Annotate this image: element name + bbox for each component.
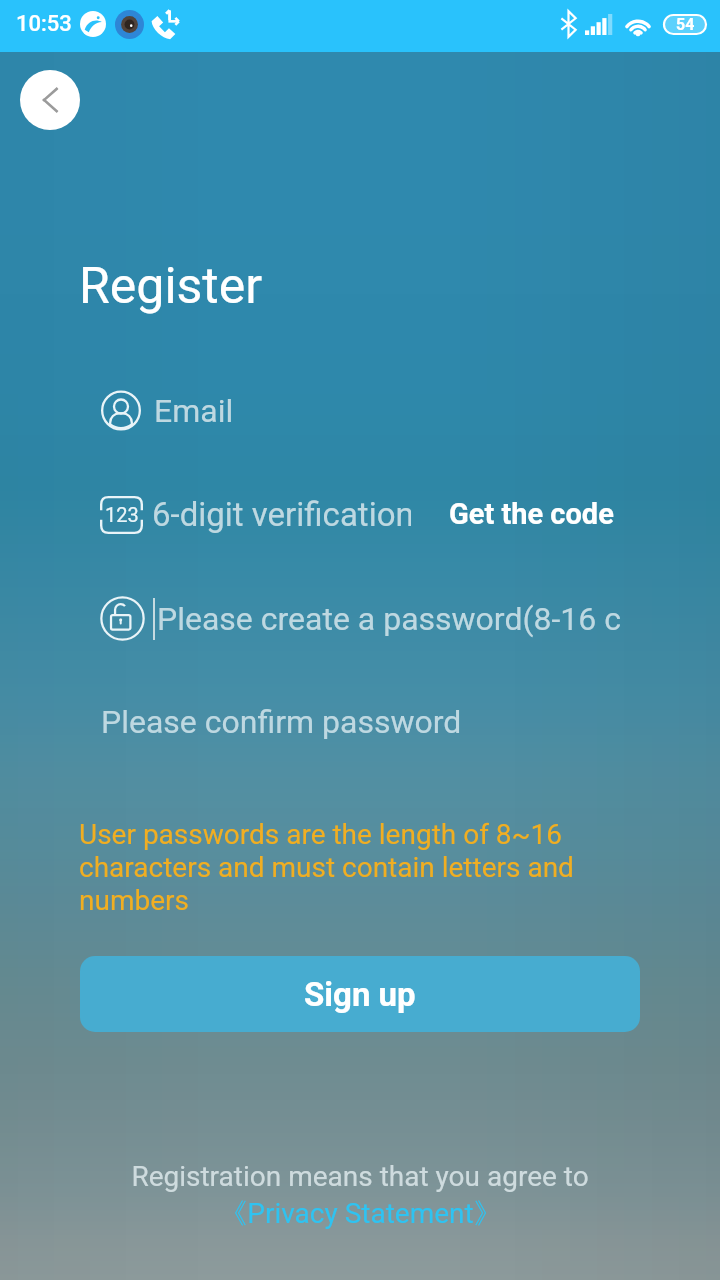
button[interactable]: Please create a password(8-16 c <box>80 578 650 658</box>
button[interactable]: Email <box>80 370 640 450</box>
staticText: Please confirm password <box>101 703 462 741</box>
staticText: Sign up <box>304 975 416 1014</box>
staticText: Register <box>79 257 263 316</box>
button[interactable]: Please confirm password <box>80 682 640 762</box>
staticText: Please create a password(8-16 c <box>157 600 621 638</box>
staticText: 10:53 <box>16 11 72 37</box>
staticText: 《Privacy Statement》 <box>219 1196 502 1231</box>
button[interactable]: 《Privacy Statement》 <box>219 1196 502 1231</box>
staticText: User passwords are the length of 8~16 ch… <box>79 818 579 917</box>
staticText: 54 <box>676 15 695 34</box>
button[interactable]: 123 <box>80 474 411 554</box>
button[interactable]: Get the code <box>420 474 630 554</box>
button[interactable]: Back <box>20 70 80 130</box>
staticText: 123 <box>105 503 139 526</box>
button[interactable]: Sign up <box>80 956 640 1032</box>
staticText: Get the code <box>449 497 614 531</box>
staticText: 6-digit verification <box>152 495 411 534</box>
staticText: Registration means that you agree to <box>131 1160 589 1193</box>
staticText: Email <box>154 392 234 430</box>
